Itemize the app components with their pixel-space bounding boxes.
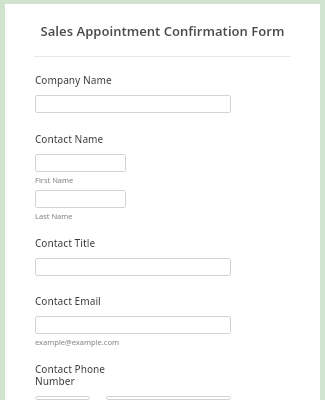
staticText: Contact Name [35, 132, 104, 146]
staticText: Last Name [35, 211, 73, 221]
button[interactable] [35, 316, 231, 334]
button[interactable] [106, 396, 231, 400]
staticText: Sales Appointment Confirmation Form [25, 22, 300, 40]
button[interactable] [35, 258, 231, 276]
staticText: Contact Phone Number [35, 362, 106, 388]
button[interactable] [35, 190, 126, 208]
button[interactable] [35, 95, 231, 113]
staticText: Contact Title [35, 236, 96, 250]
staticText: First Name [35, 175, 74, 185]
staticText: Company Name [35, 73, 112, 87]
button[interactable] [35, 396, 90, 400]
button[interactable] [35, 154, 126, 172]
staticText: example@example.com [35, 337, 119, 347]
staticText: Contact Email [35, 294, 101, 308]
